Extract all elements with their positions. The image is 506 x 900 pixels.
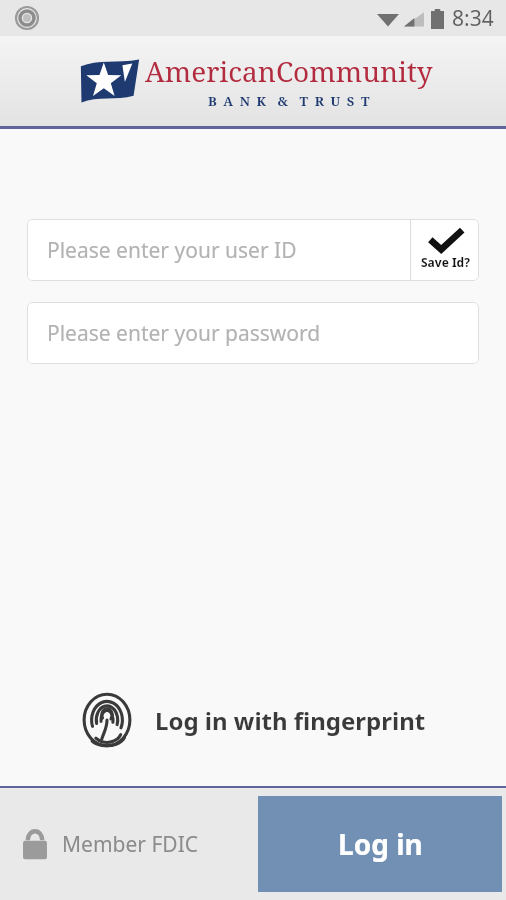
staticText: AmericanCommunity bbox=[145, 52, 433, 90]
staticText: Please enter your password bbox=[47, 319, 321, 348]
staticText: Log in bbox=[338, 825, 423, 863]
staticText: B A N K & T R U S T bbox=[208, 92, 371, 110]
button[interactable]: Log in bbox=[258, 796, 502, 892]
staticText: 8:34 bbox=[452, 4, 494, 33]
button[interactable]: Please enter your password bbox=[27, 302, 479, 364]
staticText: Member FDIC bbox=[62, 830, 199, 859]
staticText: Save Id? bbox=[421, 254, 470, 270]
button[interactable]: Please enter your user ID bbox=[27, 219, 410, 281]
staticText: Log in with fingerprint bbox=[155, 704, 426, 737]
staticText: Please enter your user ID bbox=[47, 236, 297, 265]
button[interactable]: Log in with fingerprint bbox=[61, 684, 446, 756]
button[interactable]: Save Id bbox=[411, 219, 479, 281]
